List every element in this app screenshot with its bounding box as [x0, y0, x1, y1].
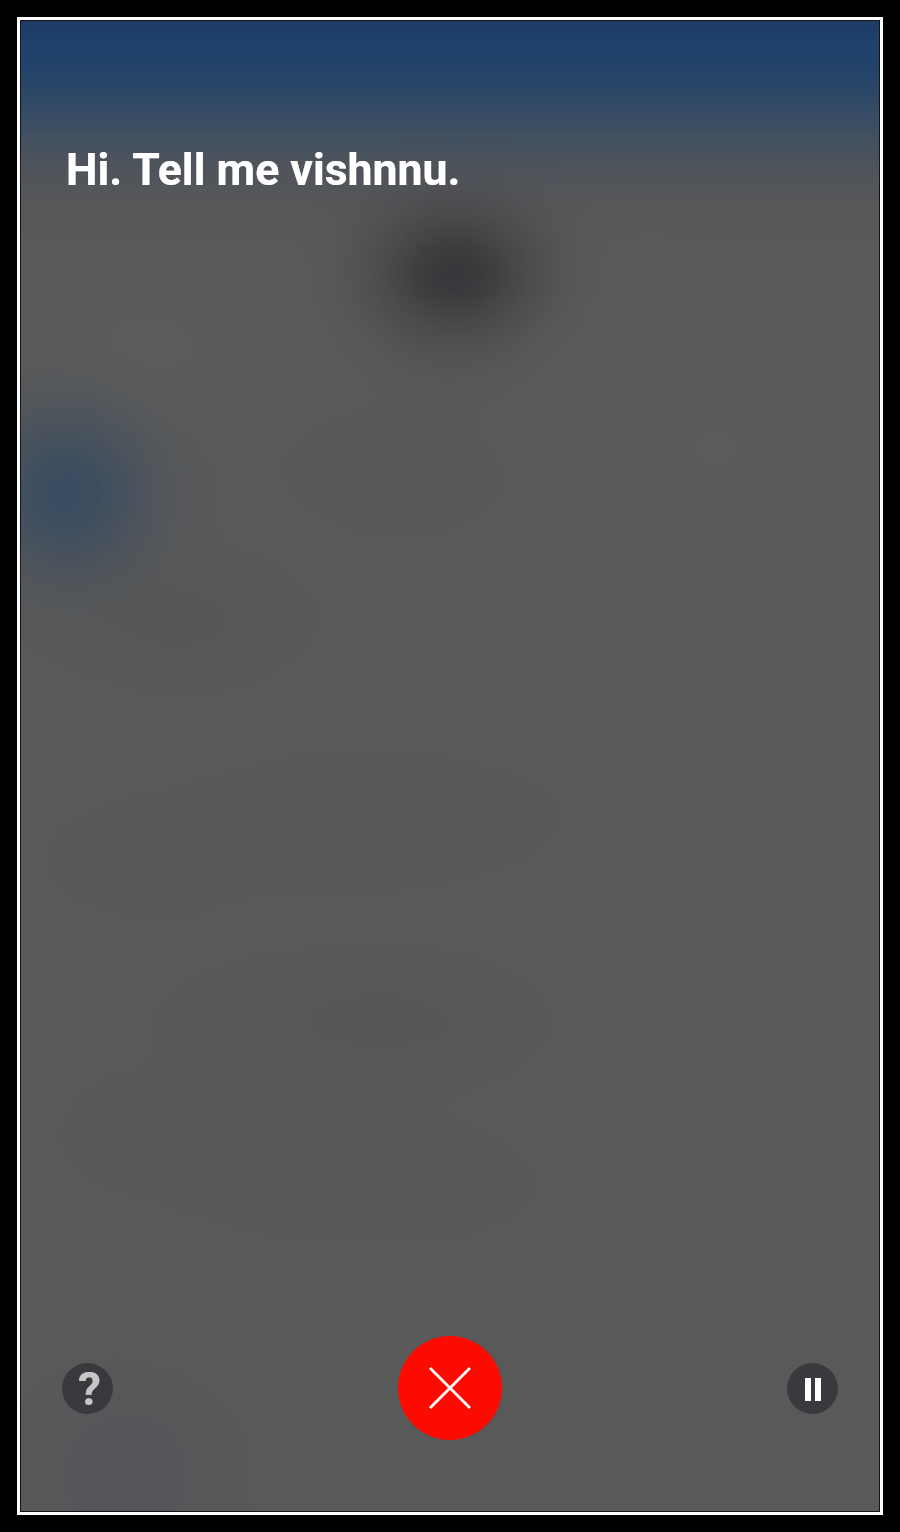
staticText: ?: [78, 1363, 101, 1413]
button[interactable]: Help: [62, 1363, 113, 1414]
staticText: Hi. Tell me vishnnu.: [66, 144, 461, 196]
button[interactable]: Pause: [787, 1363, 838, 1414]
button[interactable]: Cancel: [398, 1336, 502, 1440]
